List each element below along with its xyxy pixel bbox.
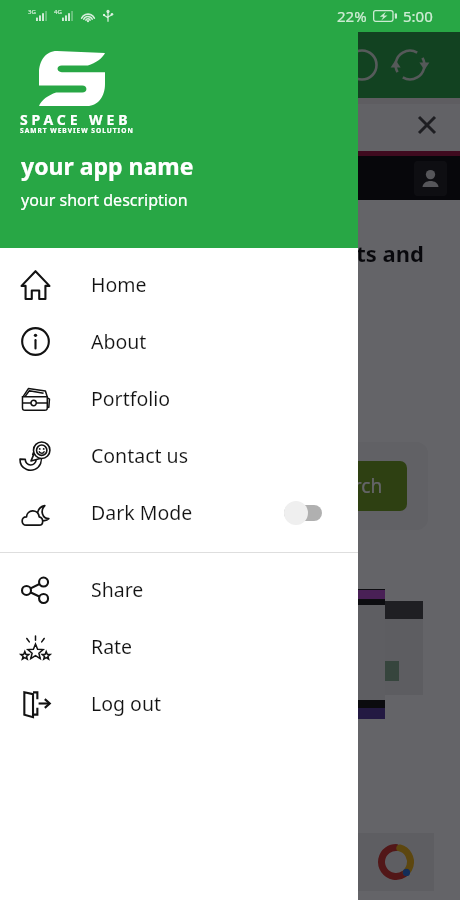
staticText: The Best Android Apps, Widgets and bbox=[0, 238, 424, 268]
staticText: 3G bbox=[28, 8, 36, 16]
staticText: 4G bbox=[54, 8, 62, 16]
staticText: Contact us bbox=[91, 442, 189, 469]
button[interactable]: Dark mode toggle bbox=[284, 500, 322, 526]
button[interactable]: Home bbox=[340, 43, 384, 87]
staticText: SAMRT WEBVIEW SOLUTION bbox=[20, 126, 134, 135]
button[interactable]: Dark Mode bbox=[0, 484, 358, 541]
button[interactable] bbox=[30, 461, 295, 511]
button[interactable]: Home bbox=[0, 256, 358, 313]
button[interactable]: Close bbox=[412, 110, 442, 140]
staticText: 5:00 bbox=[403, 6, 433, 26]
staticText: About bbox=[91, 328, 147, 355]
staticText: 22% bbox=[337, 6, 367, 26]
staticText: your short description bbox=[21, 189, 188, 211]
staticText: Search bbox=[322, 473, 383, 499]
button[interactable]: Refresh bbox=[388, 43, 432, 87]
button[interactable]: Rate bbox=[0, 618, 358, 675]
staticText: Home bbox=[91, 271, 147, 298]
button[interactable]: Account bbox=[414, 161, 447, 196]
staticText: Log out bbox=[91, 690, 161, 717]
button[interactable]: Log out bbox=[0, 675, 358, 732]
staticText: SPACE WEB bbox=[20, 110, 132, 129]
button[interactable]: Portfolio bbox=[0, 370, 358, 427]
staticText: Share bbox=[91, 576, 144, 603]
staticText: your app name bbox=[21, 150, 194, 181]
button[interactable]: Contact us bbox=[0, 427, 358, 484]
button[interactable]: Share bbox=[0, 561, 358, 618]
staticText: Portfolio bbox=[91, 385, 171, 412]
button[interactable]: About bbox=[0, 313, 358, 370]
staticText: Dark Mode bbox=[91, 499, 193, 526]
staticText: Rate bbox=[91, 633, 133, 660]
button[interactable]: Search bbox=[297, 461, 407, 511]
